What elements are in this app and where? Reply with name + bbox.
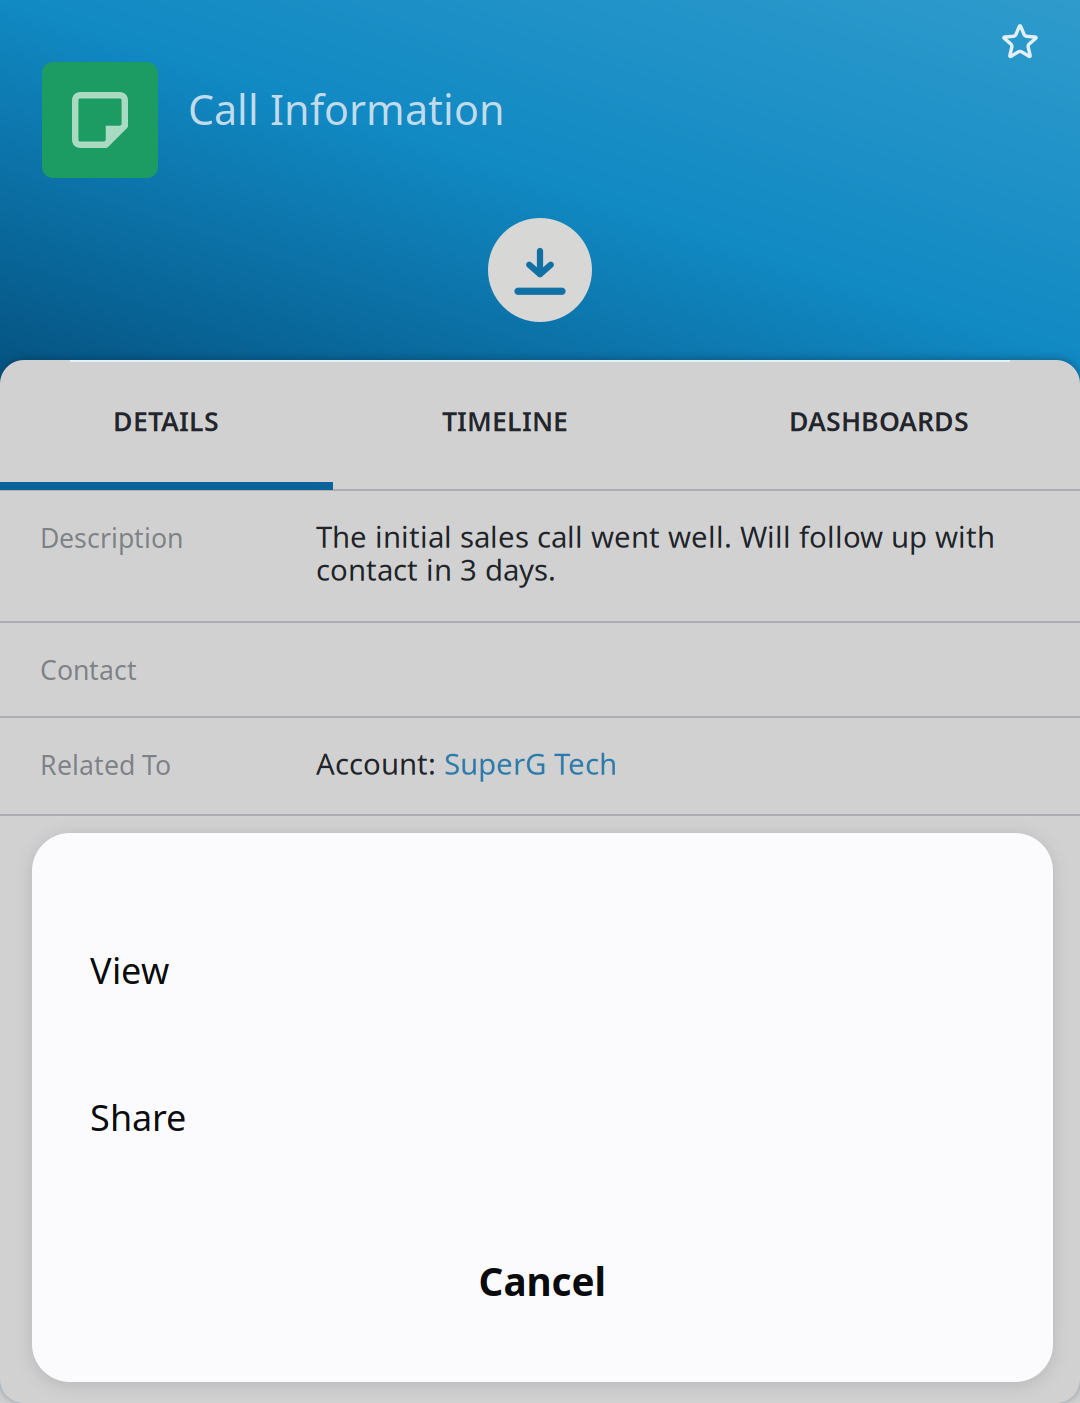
staticText: SuperG Tech [444,744,617,783]
staticText: Contact [40,652,137,687]
staticText: Call Information [188,82,505,136]
button[interactable]: Share [32,1047,1053,1187]
staticText: Account: [316,744,444,783]
staticText: Share [90,1093,186,1141]
button[interactable]: Cancel [32,1211,1053,1351]
button[interactable]: Download [488,218,592,322]
staticText: DASHBOARDS [789,403,969,439]
staticText: Description [40,520,183,555]
staticText: TIMELINE [442,403,568,439]
staticText: Related To [40,747,171,782]
button[interactable]: Favorite [984,6,1056,78]
button[interactable]: DASHBOARDS [678,360,1080,482]
staticText: Cancel [478,1255,606,1307]
staticText: DETAILS [113,403,219,439]
button[interactable]: DETAILS [0,360,332,482]
button[interactable]: TIMELINE [332,360,678,482]
button[interactable]: View [32,900,1053,1040]
staticText: View [90,946,169,994]
staticText: The initial sales call went well. Will f… [316,517,995,589]
